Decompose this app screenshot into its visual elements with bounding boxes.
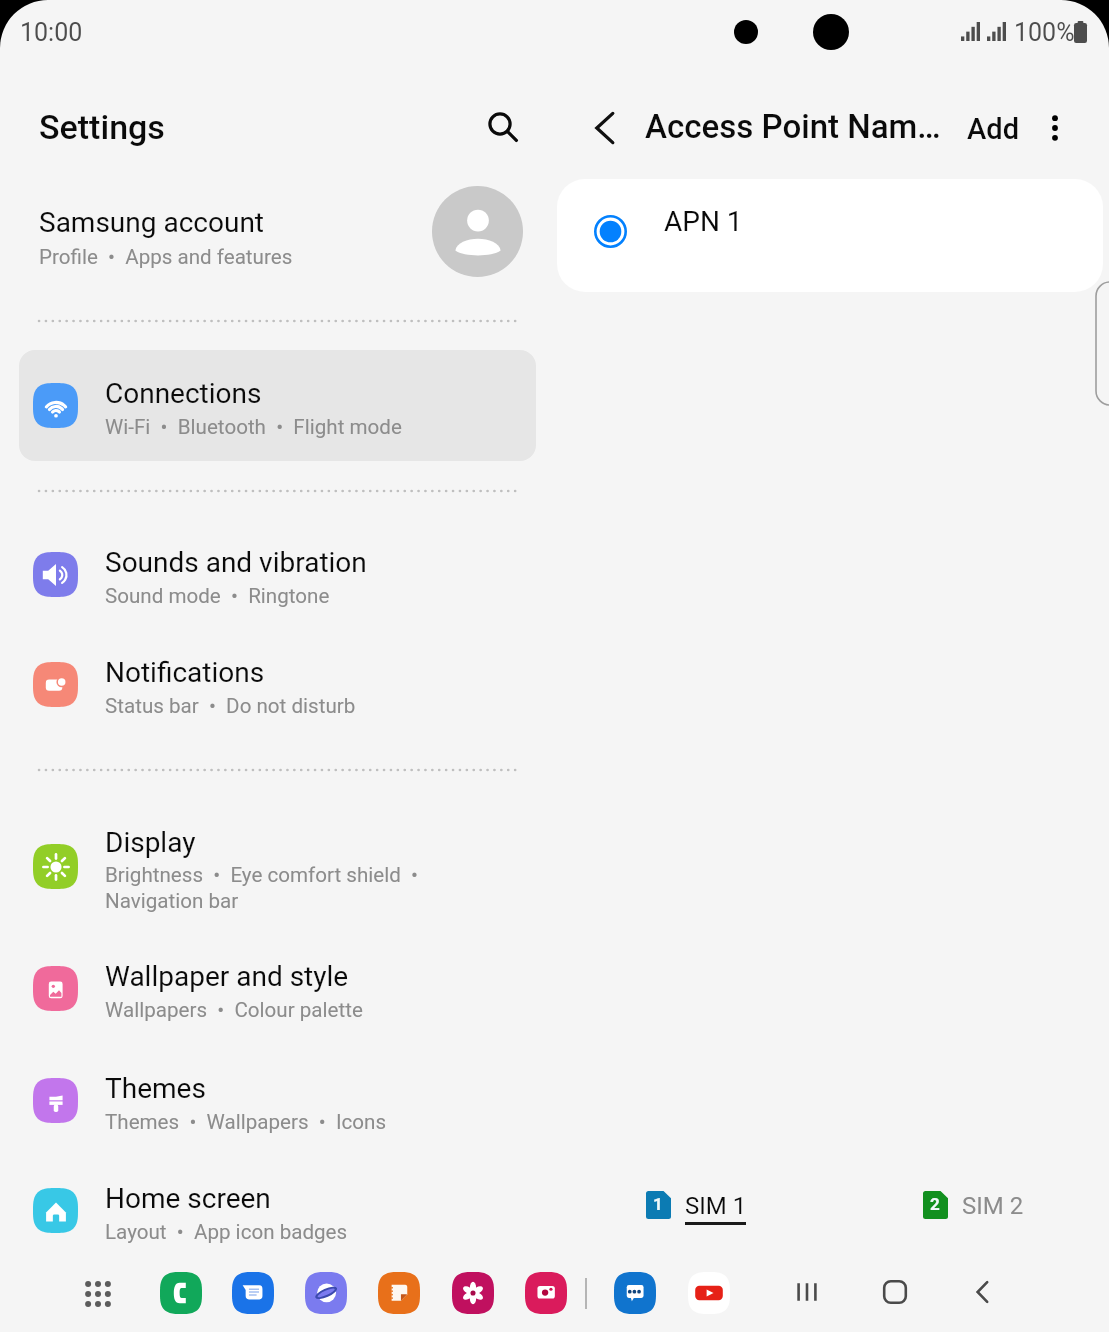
button[interactable]: Sounds and vibration (19, 519, 536, 627)
button[interactable]: Back (961, 1270, 1005, 1314)
button[interactable]: Home screen (19, 1155, 536, 1263)
staticText: Themes • Wallpapers • Icons (105, 1110, 387, 1134)
button[interactable] (452, 1272, 494, 1314)
button[interactable] (378, 1272, 420, 1314)
staticText: Navigation bar (105, 889, 239, 913)
button[interactable]: APN 1 (557, 179, 1103, 292)
staticText: APN 1 (664, 205, 743, 238)
staticText: Samsung account (39, 206, 264, 239)
button[interactable] (232, 1272, 274, 1314)
button[interactable]: 1 (640, 1180, 758, 1236)
staticText: Display (105, 826, 196, 859)
button[interactable]: Themes (19, 1045, 536, 1153)
staticText: Profile • Apps and features (39, 245, 293, 269)
button[interactable]: Notifications (19, 629, 536, 737)
staticText: Wallpaper and style (105, 960, 349, 993)
button[interactable]: Add (958, 103, 1029, 155)
button[interactable]: Wallpaper and style (19, 933, 536, 1041)
button[interactable]: More options (1033, 106, 1077, 150)
button[interactable] (525, 1272, 567, 1314)
button[interactable] (160, 1272, 202, 1314)
button[interactable]: 2 (917, 1180, 1035, 1236)
staticText: 10:00 (20, 18, 83, 47)
button[interactable]: Apps (85, 1281, 111, 1307)
staticText: SIM 2 (962, 1192, 1024, 1220)
staticText: 2 (930, 1194, 940, 1214)
staticText: Notifications (105, 656, 265, 689)
staticText: Layout • App icon badges (105, 1220, 348, 1244)
button[interactable]: Connections (19, 350, 536, 461)
staticText: Sounds and vibration (105, 546, 367, 579)
staticText: Themes (105, 1072, 206, 1105)
staticText: Status bar • Do not disturb (105, 694, 356, 718)
staticText: Wi-Fi • Bluetooth • Flight mode (105, 415, 402, 439)
staticText: Settings (39, 107, 165, 147)
staticText: Connections (105, 377, 262, 410)
staticText: Home screen (105, 1182, 271, 1215)
button[interactable]: Home (873, 1270, 917, 1314)
staticText: Brightness • Eye comfort shield • (105, 863, 418, 887)
button[interactable]: Display (19, 811, 536, 921)
button[interactable] (688, 1272, 730, 1314)
button[interactable] (614, 1272, 656, 1314)
staticText: SIM 1 (685, 1192, 747, 1220)
button[interactable] (305, 1272, 347, 1314)
button[interactable]: Back (584, 106, 628, 150)
staticText: 1 (653, 1194, 663, 1214)
button[interactable]: Search (480, 104, 524, 148)
button[interactable]: Recents (785, 1270, 829, 1314)
staticText: Sound mode • Ringtone (105, 584, 330, 608)
staticText: 100% (1014, 18, 1075, 47)
staticText: Wallpapers • Colour palette (105, 998, 363, 1022)
button[interactable]: Samsung account (19, 182, 541, 280)
staticText: Access Point Nam… (645, 107, 955, 146)
staticText: Add (967, 112, 1020, 146)
